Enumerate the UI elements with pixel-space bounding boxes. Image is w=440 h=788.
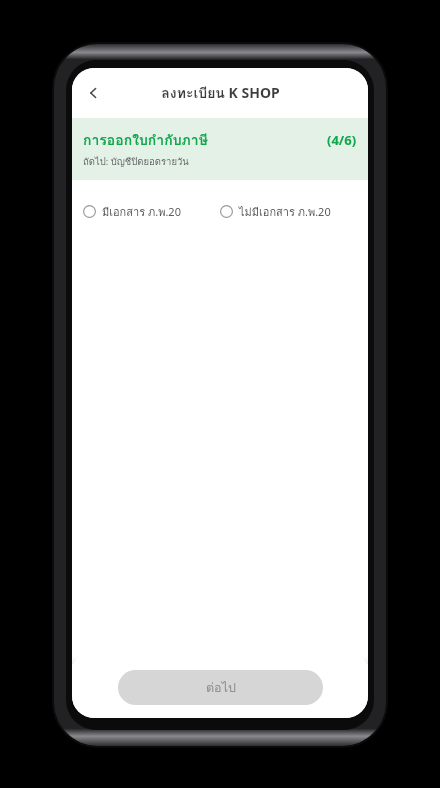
button[interactable]: มีเอกสาร ภ.พ.20 xyxy=(83,199,220,224)
button[interactable]: Back xyxy=(72,71,116,115)
staticText: ลงทะเบียน K SHOP xyxy=(161,82,280,104)
staticText: การออกใบกำกับภาษี xyxy=(83,129,208,151)
staticText: มีเอกสาร ภ.พ.20 xyxy=(102,203,181,220)
staticText: ถัดไป: บัญชีปิดยอดรายวัน xyxy=(83,154,189,169)
staticText: ต่อไป xyxy=(206,678,236,698)
staticText: ไม่มีเอกสาร ภ.พ.20 xyxy=(239,203,331,220)
staticText: (4/6) xyxy=(327,131,357,149)
button[interactable]: ไม่มีเอกสาร ภ.พ.20 xyxy=(220,199,357,224)
button[interactable]: ต่อไป xyxy=(118,670,323,705)
